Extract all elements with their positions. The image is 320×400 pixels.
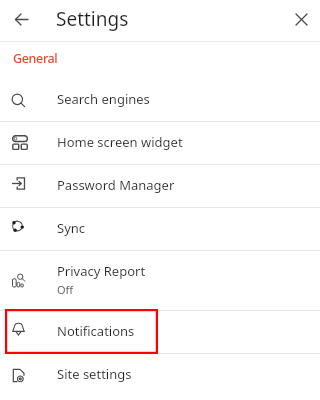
staticText: General — [13, 50, 58, 67]
staticText: Password Manager — [57, 176, 175, 194]
staticText: Privacy Report — [57, 262, 146, 280]
button[interactable]: Back — [9, 7, 33, 31]
staticText: Sync — [57, 219, 86, 237]
button[interactable]: Close — [288, 6, 314, 32]
staticText: Home screen widget — [57, 133, 183, 151]
staticText: Search engines — [57, 90, 150, 108]
button[interactable]: Password Manager — [0, 165, 320, 207]
button[interactable]: Privacy Report — [0, 251, 320, 310]
button[interactable]: Search engines — [0, 79, 320, 121]
button[interactable]: Site settings — [0, 354, 320, 396]
staticText: Site settings — [57, 365, 132, 383]
staticText: Notifications — [57, 322, 135, 340]
button[interactable]: Sync — [0, 208, 320, 250]
button[interactable]: Notifications — [0, 311, 320, 353]
staticText: Settings — [56, 6, 129, 32]
button[interactable]: Home screen widget — [0, 122, 320, 164]
staticText: Off — [57, 282, 74, 297]
